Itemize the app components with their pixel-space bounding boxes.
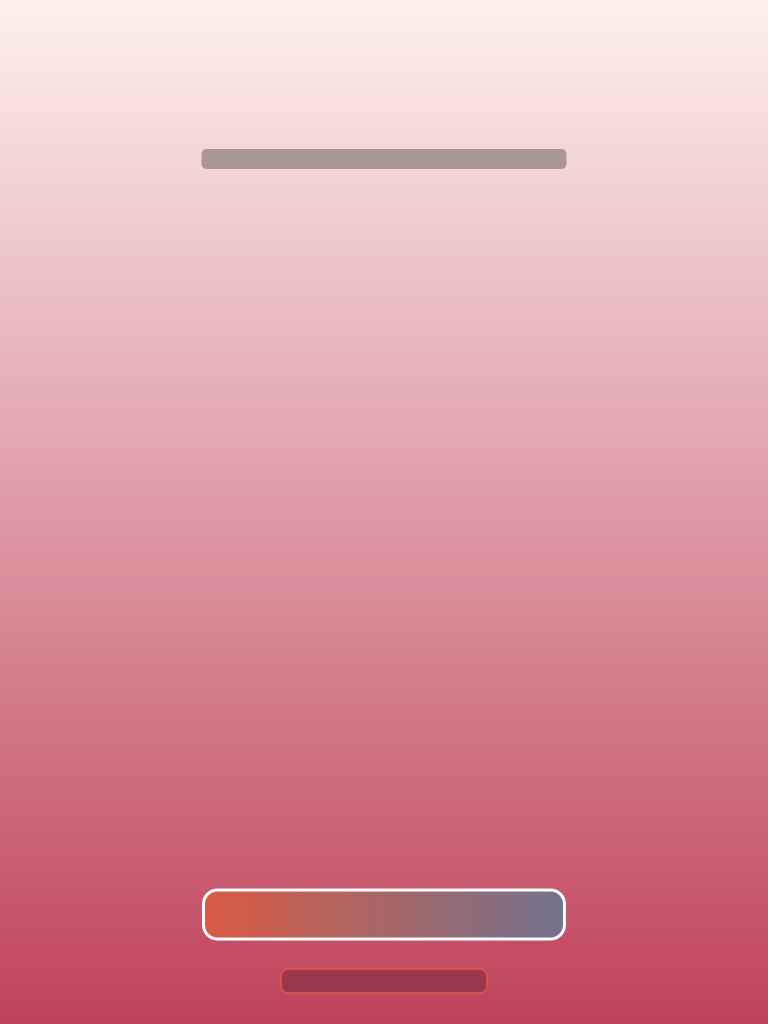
button[interactable]: Secondary action: [281, 969, 487, 993]
button[interactable]: Continue: [203, 890, 564, 939]
